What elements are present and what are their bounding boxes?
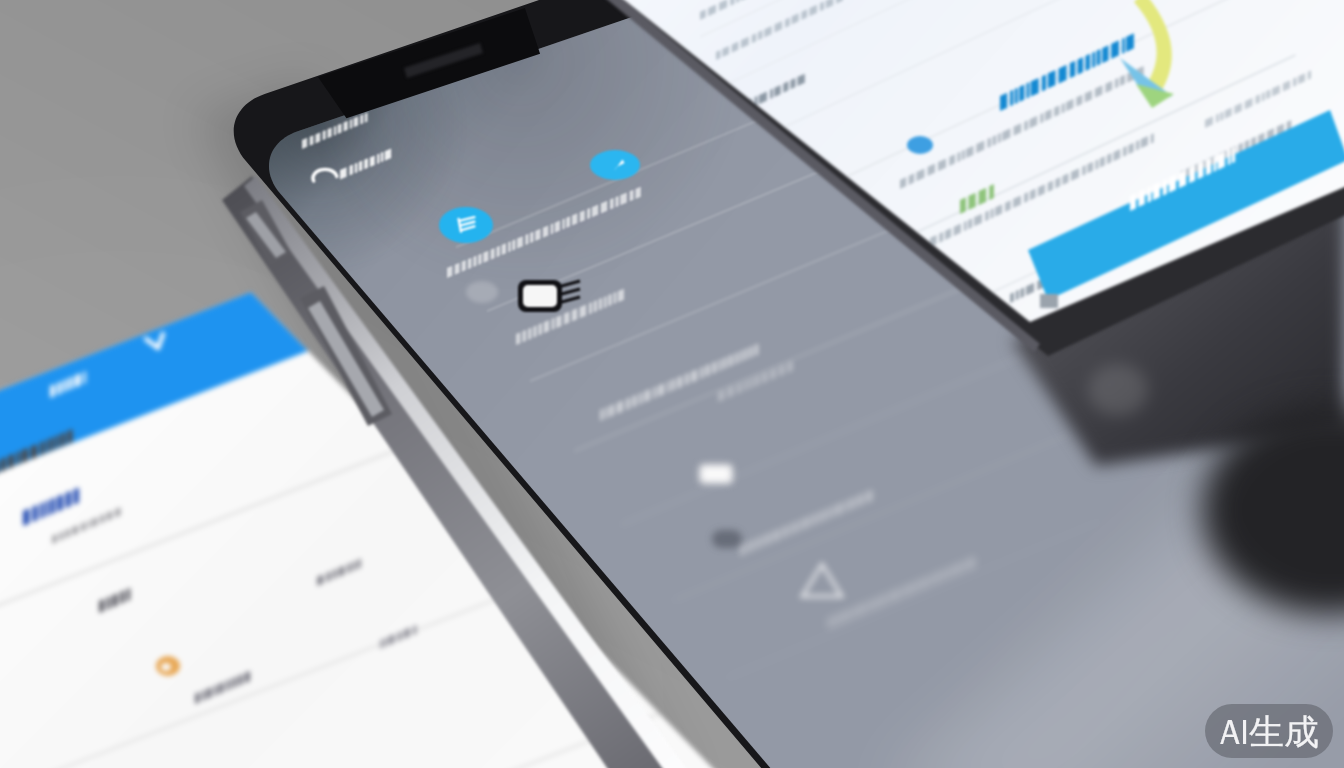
button[interactable]: Two phones on a desk xyxy=(0,0,1344,768)
